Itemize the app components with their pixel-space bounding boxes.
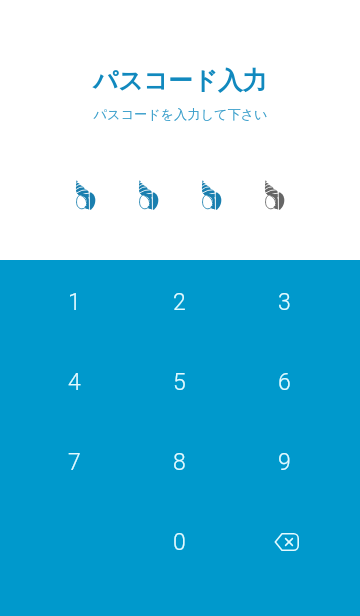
button[interactable]: Delete [232, 502, 337, 582]
button[interactable]: 5 [127, 342, 232, 422]
staticText: 8 [173, 449, 186, 476]
button[interactable]: 6 [232, 342, 337, 422]
staticText: 6 [278, 369, 291, 396]
staticText: 4 [68, 369, 81, 396]
button[interactable]: 2 [127, 262, 232, 342]
button[interactable]: 0 [127, 502, 232, 582]
button[interactable]: 8 [127, 422, 232, 502]
staticText: パスコード入力 [93, 65, 267, 96]
staticText: 7 [68, 449, 81, 476]
button[interactable]: 3 [232, 262, 337, 342]
button[interactable]: 7 [22, 422, 127, 502]
button[interactable]: 4 [22, 342, 127, 422]
staticText: 3 [278, 289, 291, 316]
staticText: 2 [173, 289, 186, 316]
staticText: パスコードを入力して下さい [93, 106, 268, 123]
staticText: 9 [278, 449, 291, 476]
staticText: 1 [68, 289, 81, 316]
staticText: 0 [173, 529, 186, 556]
button[interactable]: 9 [232, 422, 337, 502]
staticText: 5 [173, 369, 186, 396]
button[interactable]: 1 [22, 262, 127, 342]
other: Delete [268, 529, 302, 555]
